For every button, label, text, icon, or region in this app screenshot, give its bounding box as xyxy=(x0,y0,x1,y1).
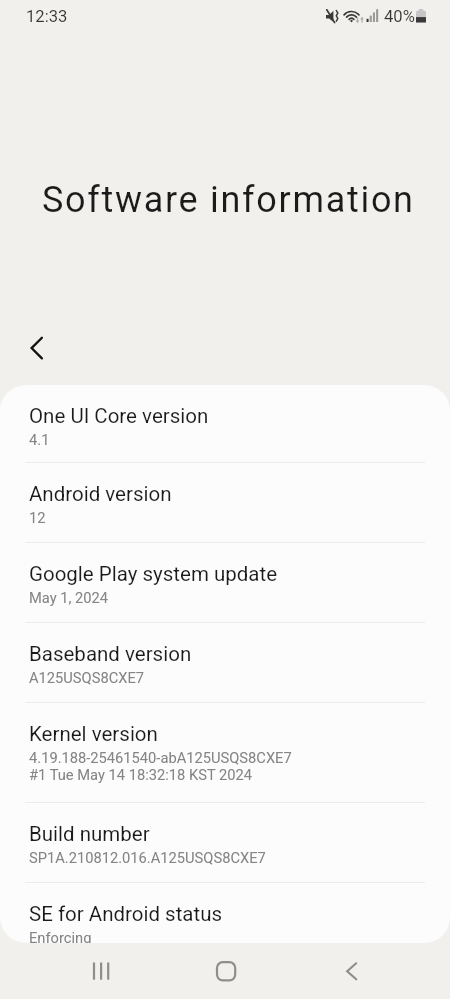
button[interactable]: Build number xyxy=(0,803,450,882)
staticText: Baseband version xyxy=(29,642,192,666)
staticText: A125USQS8CXE7 xyxy=(29,669,145,686)
staticText: #1 Tue May 14 18:32:18 KST 2024 xyxy=(29,766,253,783)
button[interactable]: SE for Android status xyxy=(0,883,450,943)
staticText: May 1, 2024 xyxy=(29,589,109,606)
staticText: 12 xyxy=(29,509,46,526)
button[interactable]: Android version xyxy=(0,463,450,542)
button[interactable]: Navigate up xyxy=(12,322,64,374)
button[interactable]: Baseband version xyxy=(0,623,450,702)
button[interactable]: Kernel version xyxy=(0,703,450,802)
staticText: Android version xyxy=(29,482,172,506)
button[interactable]: Recent apps xyxy=(70,943,130,999)
staticText: SP1A.210812.016.A125USQS8CXE7 xyxy=(29,849,266,866)
button[interactable]: One UI Core version xyxy=(0,385,450,462)
staticText: Software information xyxy=(42,179,415,221)
staticText: Google Play system update xyxy=(29,562,278,586)
button[interactable]: Google Play system update xyxy=(0,543,450,622)
staticText: 40% xyxy=(384,7,415,26)
button[interactable]: Back xyxy=(321,943,381,999)
staticText: Enforcing xyxy=(29,929,92,943)
button[interactable]: Home xyxy=(196,943,256,999)
staticText: One UI Core version xyxy=(29,404,209,428)
staticText: Build number xyxy=(29,822,150,846)
staticText: SE for Android status xyxy=(29,902,223,926)
staticText: 4.1 xyxy=(29,431,50,448)
staticText: Kernel version xyxy=(29,722,158,746)
staticText: 12:33 xyxy=(26,7,68,26)
staticText: 4.19.188-25461540-abA125USQS8CXE7 xyxy=(29,749,292,766)
